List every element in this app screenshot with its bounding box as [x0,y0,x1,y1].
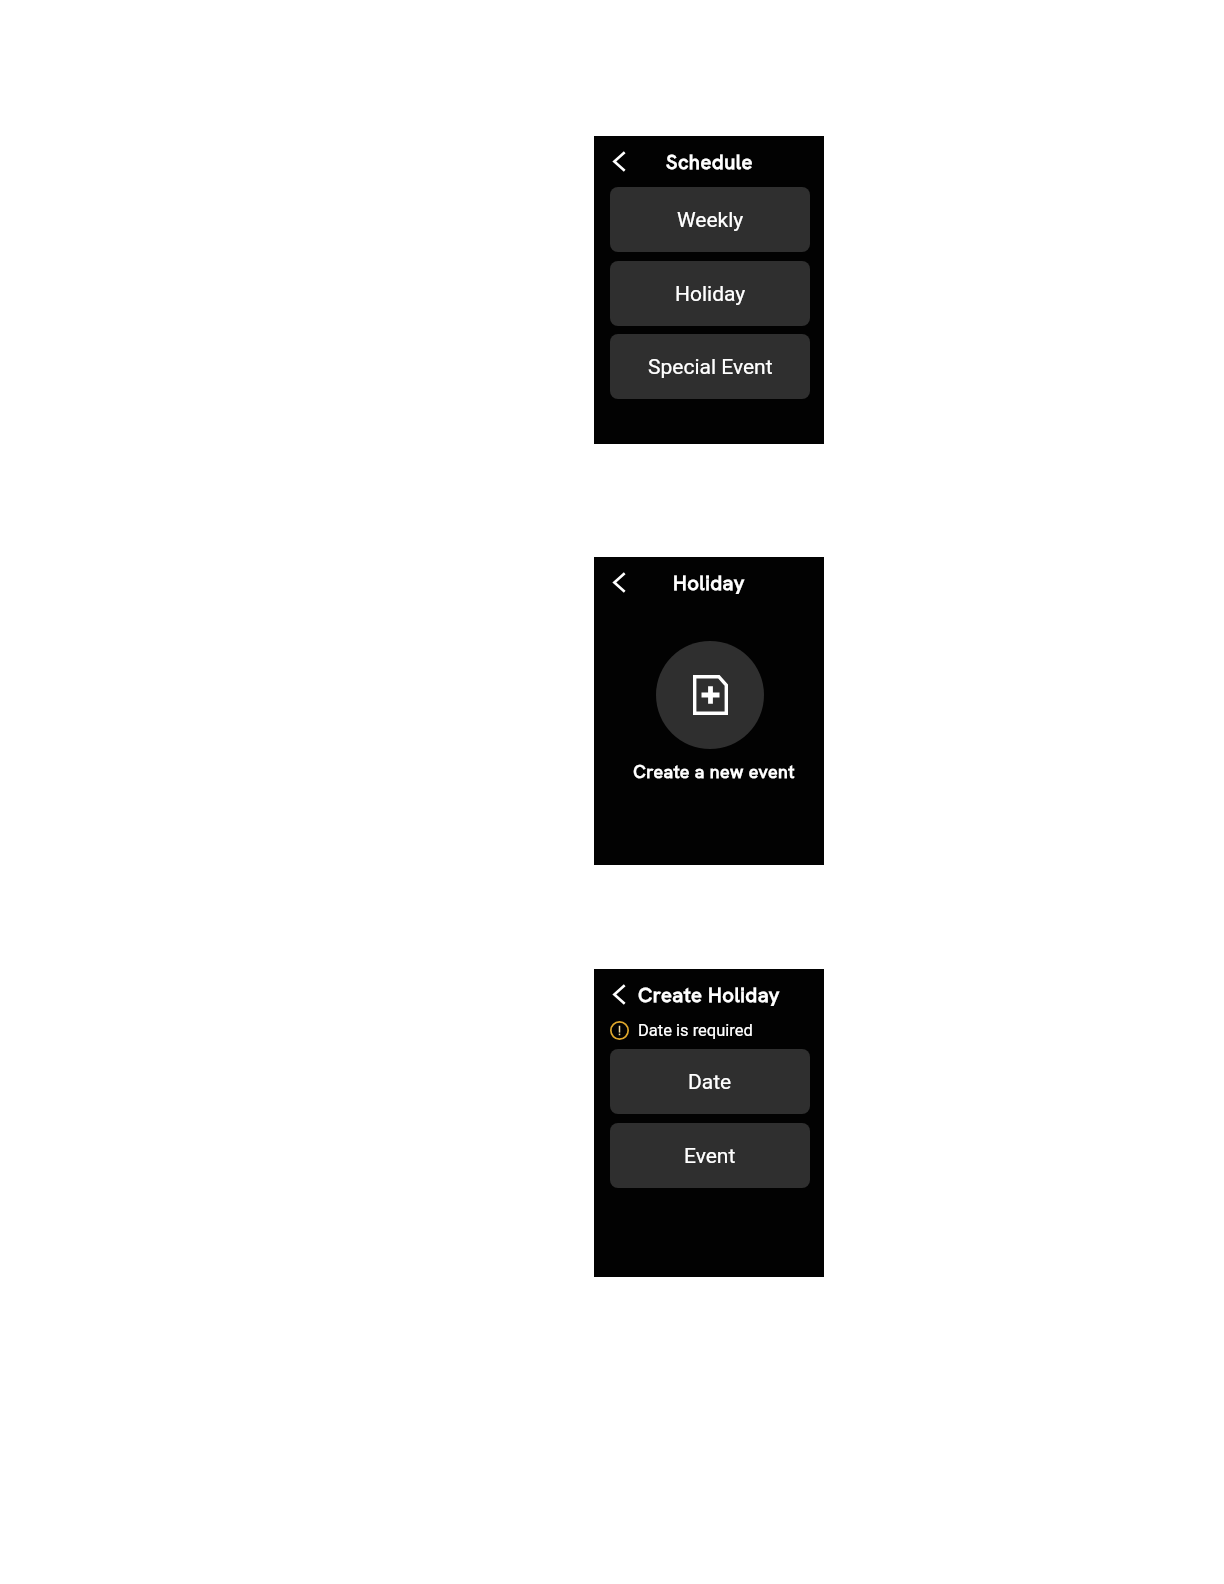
staticText: Date [688,1070,732,1095]
staticText: Schedule [666,149,753,173]
button[interactable]: Back [608,979,630,1009]
button[interactable]: Back [608,146,630,176]
button[interactable]: Holiday [610,261,810,326]
staticText: Holiday [675,282,746,307]
button[interactable]: Date [610,1049,810,1114]
button[interactable]: Weekly [610,187,810,252]
staticText: Create Holiday [638,982,780,1006]
staticText: Create a new event [633,760,795,783]
staticText: Weekly [677,208,744,233]
staticText: Date is required [638,1021,753,1040]
staticText: Special Event [648,355,773,380]
button[interactable]: Back [608,567,630,597]
button[interactable]: Event [610,1123,810,1188]
staticText: Holiday [673,570,745,594]
button[interactable]: Create a new event [656,641,764,749]
staticText: Event [684,1144,736,1169]
button[interactable]: Special Event [610,334,810,399]
